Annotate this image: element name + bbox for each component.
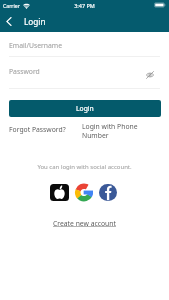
staticText: Carrier <box>3 2 20 9</box>
staticText: Forgot Password? <box>9 125 66 134</box>
button[interactable]: Forgot Password? <box>7 123 68 136</box>
button[interactable]: Create new account <box>50 216 119 231</box>
staticText: Create new account <box>53 219 116 228</box>
button[interactable]: Back <box>0 11 17 32</box>
button[interactable]: Show password <box>143 68 157 81</box>
staticText: You can login with social account. <box>0 163 169 171</box>
button[interactable]: Sign in with Google <box>75 184 93 201</box>
button[interactable]: Login with Phone Number <box>80 120 152 142</box>
staticText: Password <box>9 67 40 76</box>
button[interactable]: Sign in with Facebook <box>99 184 117 201</box>
staticText: Login <box>24 16 46 27</box>
button[interactable]: Sign in with Apple <box>50 184 69 201</box>
staticText: 3:47 PM <box>0 2 169 9</box>
staticText: Login <box>76 104 94 113</box>
button[interactable]: Login <box>9 100 161 117</box>
staticText: Email/Username <box>9 41 63 50</box>
staticText: Login with Phone Number <box>82 122 150 140</box>
